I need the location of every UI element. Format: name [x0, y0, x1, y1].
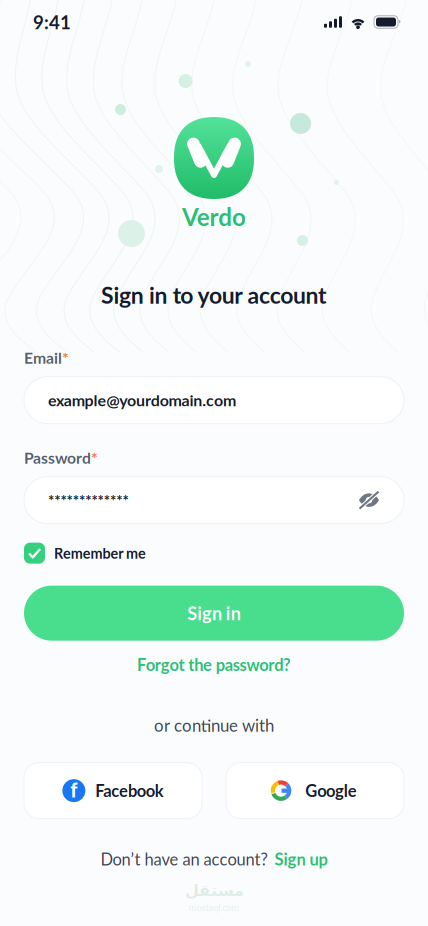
button[interactable]: Forgot the password? [24, 653, 404, 677]
staticText: Sign in to your account [101, 281, 327, 309]
staticText: f [70, 778, 77, 802]
button[interactable]: Sign up [274, 849, 327, 869]
button[interactable]: Show password [358, 489, 380, 511]
staticText: مستقل [184, 881, 243, 900]
button[interactable]: Remember me [24, 543, 404, 564]
staticText: example@yourdomain.com [48, 390, 236, 410]
staticText: Google [305, 781, 357, 800]
staticText: Facebook [95, 781, 164, 800]
staticText: Password [24, 448, 91, 467]
button[interactable]: Google [226, 763, 404, 819]
staticText: mostaql.com [188, 902, 239, 913]
button[interactable]: Sign in [24, 586, 404, 641]
staticText: ************* [48, 491, 128, 509]
button[interactable]: f [24, 763, 202, 819]
staticText: 9:41 [33, 11, 71, 33]
staticText: * [91, 448, 98, 467]
staticText: Sign up [274, 849, 327, 869]
staticText: or continue with [154, 715, 274, 735]
staticText: Don’t have an account? [100, 849, 267, 869]
staticText: Remember me [54, 544, 146, 562]
staticText: * [62, 348, 69, 367]
staticText: Sign in [187, 602, 241, 624]
staticText: Verdo [182, 202, 246, 231]
staticText: Forgot the password? [137, 655, 291, 674]
staticText: Email [24, 348, 62, 367]
